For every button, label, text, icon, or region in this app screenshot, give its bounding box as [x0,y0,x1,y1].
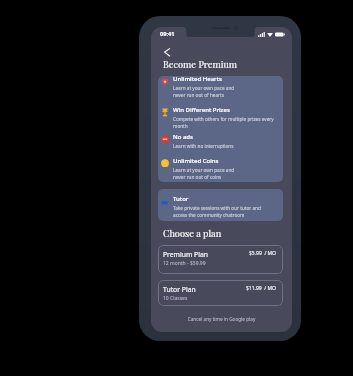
staticText: Compete with others for multiple prizes … [173,116,274,130]
button[interactable] [158,189,283,221]
staticText: 09:41 [160,30,175,38]
staticText: Premium Plan [163,250,208,259]
staticText: $11.99 / MO [246,285,276,292]
staticText: 12 month - $59.99 [163,260,206,267]
staticText: Tutor Plan [163,285,196,294]
staticText: Become Premium [163,58,238,70]
staticText: Unlimited Coins [173,157,219,165]
staticText: 10 Classes [163,295,188,302]
staticText: Take private sessions with our tutor and… [173,205,261,219]
staticText: $5.99 / MO [249,250,276,257]
staticText: Choose a plan [163,227,222,239]
staticText: Cancel any time in Google play [151,316,292,322]
button[interactable]: Tutor Plan [158,280,283,306]
staticText: No ads [173,133,193,141]
staticText: Tutor [173,195,189,203]
staticText: Win Different Prizes [173,106,230,114]
staticText: Unlimited Hearts [173,75,222,83]
staticText: Learn with no interruptions [173,143,234,149]
staticText: Learn at your own pace and never run out… [173,85,235,99]
button[interactable]: Premium Plan [158,245,283,274]
button[interactable]: Back [162,46,173,58]
staticText: Learn at your own pace and never run out… [173,167,235,181]
